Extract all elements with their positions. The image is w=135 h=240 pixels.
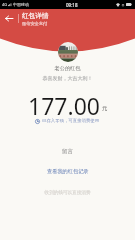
staticText: 已存入零钱，可直接消费使用 (42, 118, 100, 124)
staticText: 4G (2, 2, 8, 7)
staticText: 元 (102, 105, 108, 112)
button[interactable]: Back (0, 10, 18, 27)
staticText: 老公的红包 (0, 65, 135, 72)
button[interactable]: 已存入零钱，可直接消费使用 (0, 118, 135, 124)
staticText: 微信安全支付 (22, 21, 48, 26)
staticText: 恭喜发财，大吉大利！ (0, 75, 135, 81)
staticText: 红包详情 (22, 12, 49, 20)
staticText: 中国移动 (13, 2, 29, 7)
staticText: 09:18 (66, 2, 78, 8)
button[interactable]: 查看我的红包记录 (43, 166, 93, 177)
staticText: 留言 (0, 148, 135, 155)
staticText: 177.00 (28, 90, 100, 121)
staticText: 收到的钱可以直接消费 (0, 190, 135, 196)
